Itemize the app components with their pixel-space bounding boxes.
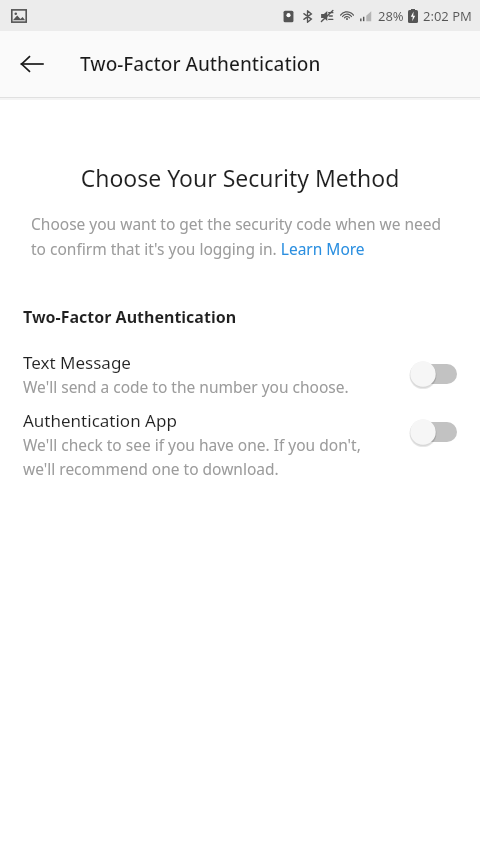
button[interactable]: Toggle — [408, 359, 458, 389]
staticText: 28% — [378, 7, 404, 25]
button[interactable]: Toggle — [408, 417, 458, 447]
staticText: Two-Factor Authentication — [23, 306, 237, 328]
staticText: We'll check to see if you have one. If y… — [23, 434, 382, 479]
staticText: Choose Your Security Method — [0, 162, 480, 193]
staticText: Text Message — [23, 351, 131, 374]
staticText: Choose you want to get the security code… — [31, 213, 452, 259]
staticText: Two-Factor Authentication — [80, 51, 321, 77]
staticText: We'll send a code to the number you choo… — [23, 376, 349, 397]
staticText: 2:02 PM — [423, 7, 472, 25]
staticText: Authentication App — [23, 409, 177, 432]
button[interactable]: Text Message — [0, 349, 480, 399]
button[interactable]: Authentication App — [0, 407, 480, 481]
button[interactable]: Back — [8, 40, 56, 88]
